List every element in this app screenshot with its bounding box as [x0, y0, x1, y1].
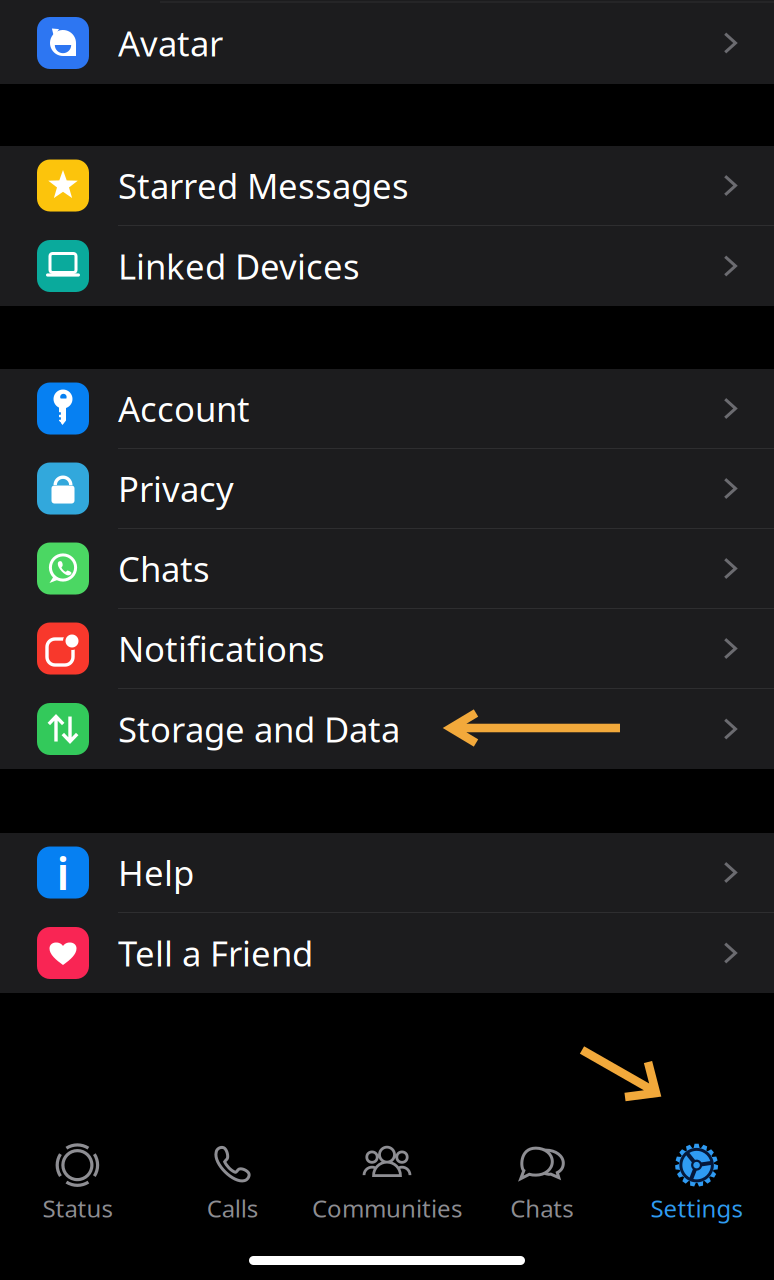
- button[interactable]: Privacy: [0, 449, 774, 529]
- staticText: Chats: [510, 1192, 573, 1224]
- staticText: Storage and Data: [118, 706, 400, 752]
- button[interactable]: Status: [0, 1143, 155, 1224]
- staticText: Chats: [118, 545, 210, 591]
- staticText: i: [56, 842, 69, 903]
- button[interactable]: Linked Devices: [0, 226, 774, 306]
- button[interactable]: Tell a Friend: [0, 913, 774, 993]
- staticText: Settings: [651, 1192, 743, 1224]
- button[interactable]: Starred Messages: [0, 146, 774, 226]
- staticText: Tell a Friend: [118, 930, 313, 976]
- button[interactable]: Chats: [0, 529, 774, 609]
- button[interactable]: Notifications: [0, 609, 774, 689]
- button[interactable]: Storage and Data: [0, 689, 774, 769]
- button[interactable]: Calls: [155, 1143, 310, 1224]
- staticText: Account: [118, 385, 250, 431]
- staticText: Notifications: [118, 625, 325, 671]
- staticText: Starred Messages: [118, 162, 409, 208]
- button[interactable]: Communities: [310, 1143, 464, 1224]
- button[interactable]: Account: [0, 369, 774, 449]
- staticText: Avatar: [118, 20, 223, 66]
- button[interactable]: Avatar: [0, 3, 774, 83]
- staticText: Status: [42, 1192, 112, 1224]
- staticText: Communities: [312, 1192, 462, 1224]
- staticText: Calls: [207, 1192, 258, 1224]
- button[interactable]: Chats: [464, 1143, 619, 1224]
- button[interactable]: Settings: [619, 1143, 774, 1224]
- staticText: Privacy: [118, 465, 234, 511]
- staticText: Help: [118, 849, 194, 895]
- button[interactable]: i: [0, 833, 774, 913]
- staticText: Linked Devices: [118, 243, 360, 289]
